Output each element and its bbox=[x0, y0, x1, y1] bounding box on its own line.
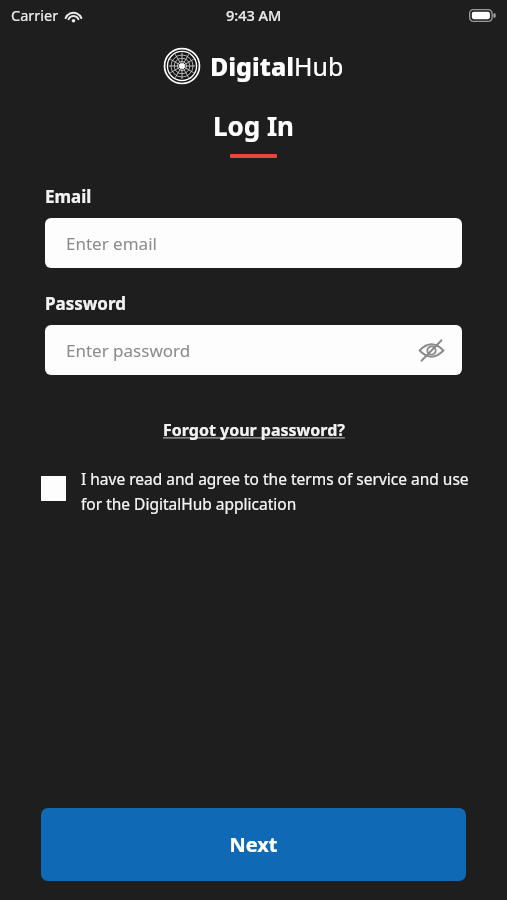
button[interactable]: Enter email bbox=[45, 218, 462, 268]
staticText: I have read and agree to the terms of se… bbox=[81, 468, 477, 514]
staticText: Enter password bbox=[66, 339, 191, 362]
button[interactable]: Show password bbox=[414, 333, 448, 367]
staticText: Log In bbox=[213, 108, 294, 143]
staticText: Forgot your password? bbox=[163, 419, 345, 441]
staticText: Enter email bbox=[66, 232, 157, 255]
staticText: Email bbox=[45, 185, 92, 208]
button[interactable]: Enter password bbox=[45, 325, 462, 375]
staticText: Digital bbox=[210, 49, 294, 83]
staticText: Next bbox=[229, 831, 278, 858]
button[interactable]: I have read and agree to the terms of se… bbox=[0, 468, 507, 514]
staticText: Password bbox=[45, 292, 126, 315]
button[interactable]: Next bbox=[41, 808, 466, 881]
staticText: 9:43 AM bbox=[226, 5, 282, 25]
staticText: Hub bbox=[294, 49, 344, 83]
button[interactable]: Forgot your password? bbox=[157, 416, 351, 444]
staticText: Carrier bbox=[11, 5, 59, 25]
